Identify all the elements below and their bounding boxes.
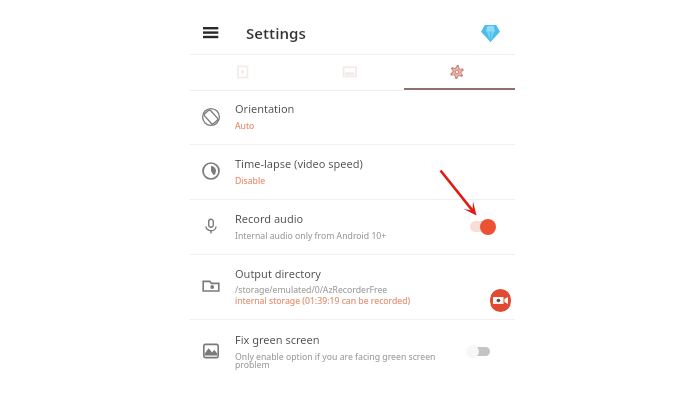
staticText: Time-lapse (video speed) (235, 156, 363, 171)
staticText: problem (235, 359, 270, 371)
button[interactable]: Record tab (225, 54, 261, 90)
staticText: Only enable option if you are facing gre… (235, 351, 436, 363)
button[interactable]: Record audio toggle (466, 216, 500, 237)
button[interactable]: Settings (246, 23, 306, 43)
button[interactable]: Fix green screen (190, 319, 515, 378)
button[interactable]: Start recording (490, 289, 511, 312)
staticText: internal storage (01:39:19 can be record… (235, 295, 411, 307)
button[interactable]: Settings tab (439, 54, 475, 90)
staticText: Record audio (235, 211, 304, 226)
button[interactable]: Menu (198, 22, 224, 44)
staticText: Fix green screen (235, 332, 320, 347)
staticText: /storage/emulated/0/AzRecorderFree (235, 284, 388, 296)
staticText: Auto (235, 120, 255, 132)
button[interactable]: Record audio (190, 199, 515, 254)
staticText: Orientation (235, 101, 295, 116)
staticText: Internal audio only from Android 10+ (235, 230, 387, 242)
button[interactable]: Time-lapse video speed (190, 144, 515, 199)
staticText: Disable (235, 175, 266, 187)
button[interactable]: Premium (477, 21, 503, 45)
button[interactable]: Orientation (190, 90, 515, 144)
button[interactable]: Media tab (332, 54, 368, 90)
button[interactable]: Fix green screen toggle (464, 341, 496, 361)
staticText: Output directory (235, 266, 321, 281)
staticText: Settings (246, 23, 306, 43)
button[interactable]: Output directory (190, 254, 515, 319)
